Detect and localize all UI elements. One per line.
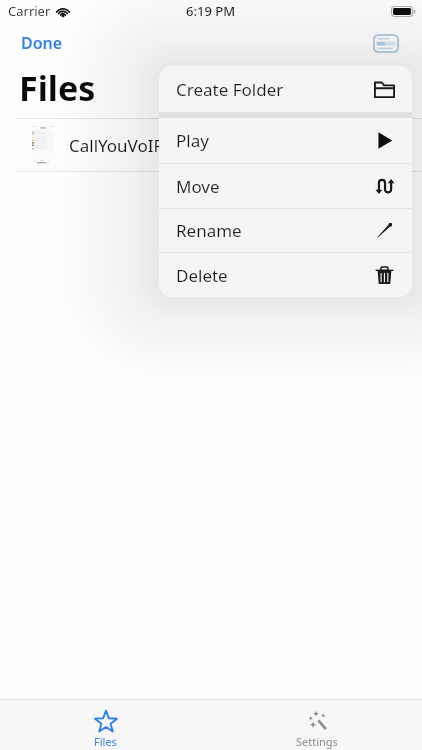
button[interactable]: CallYouVoIP [0,119,422,171]
button[interactable]: Rename [159,209,412,252]
staticText: 6:19 PM [186,2,236,20]
staticText: Delete [176,264,228,287]
staticText: Carrier [8,2,51,20]
staticText: Done [21,32,63,54]
staticText: Rename [176,219,242,242]
staticText: Settings [296,734,338,749]
staticText: CallYouVoIP [69,134,164,157]
staticText: Move [176,175,220,198]
button[interactable]: Done [12,25,72,61]
button[interactable]: Delete [159,253,412,297]
staticText: Files [94,734,117,749]
staticText: Create Folder [176,78,284,101]
button[interactable]: Settings [211,700,422,750]
button[interactable]: Files [0,700,211,750]
button[interactable]: Create Folder [159,66,412,112]
staticText: Play [176,129,209,152]
button[interactable]: Play [159,118,412,163]
staticText: Files [19,65,96,111]
button[interactable]: Move [159,164,412,208]
button[interactable]: Layout [369,30,403,57]
